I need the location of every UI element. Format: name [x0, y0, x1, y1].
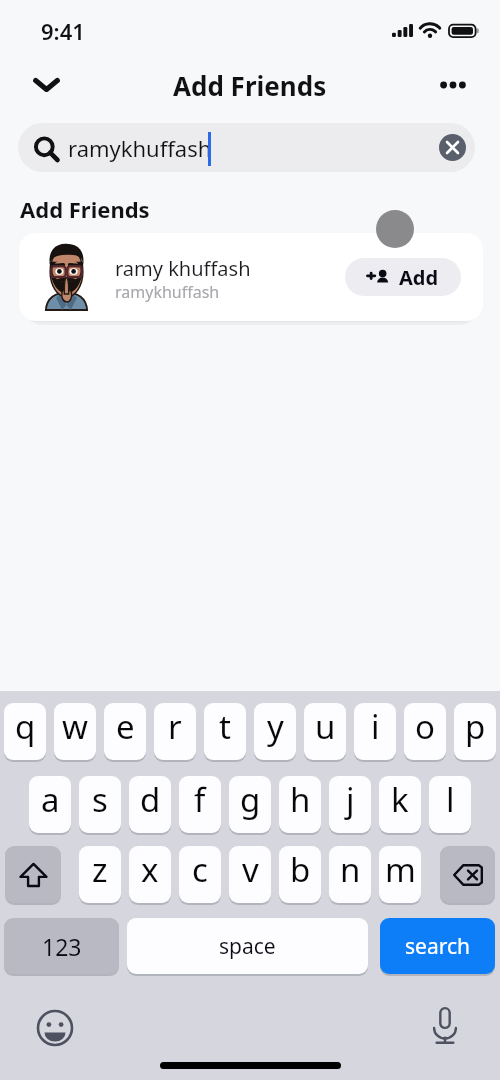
button[interactable]: Emoji keyboard — [36, 1009, 74, 1047]
button[interactable]: z — [79, 846, 121, 903]
button[interactable]: i — [354, 703, 396, 760]
staticText: u — [315, 704, 336, 749]
button[interactable]: p — [454, 703, 496, 760]
staticText: q — [15, 704, 36, 749]
staticText: v — [242, 847, 259, 892]
button[interactable]: o — [404, 703, 446, 760]
staticText: k — [391, 777, 409, 822]
staticText: e — [116, 704, 135, 749]
button[interactable]: space — [127, 918, 368, 974]
other: Backspace — [440, 846, 495, 905]
staticText: Add — [399, 264, 439, 291]
staticText: ramykhuffash — [68, 133, 212, 163]
staticText: y — [267, 704, 284, 749]
staticText: l — [446, 777, 455, 822]
staticText: x — [141, 847, 159, 892]
button[interactable]: Dictation — [426, 1007, 464, 1045]
button[interactable]: Close — [18, 58, 75, 112]
button[interactable]: h — [279, 776, 321, 833]
staticText: r — [168, 704, 182, 749]
button[interactable]: d — [129, 776, 171, 833]
button[interactable]: k — [379, 776, 421, 833]
button[interactable]: s — [79, 776, 121, 833]
staticText: d — [140, 777, 161, 822]
button[interactable]: r — [154, 703, 196, 760]
staticText: m — [385, 847, 416, 892]
button[interactable]: b — [279, 846, 321, 903]
button[interactable]: ramy khuffash — [19, 233, 483, 321]
other: Shift — [5, 846, 61, 905]
button[interactable]: Add — [345, 258, 461, 296]
button[interactable]: Clear text — [439, 134, 466, 161]
button[interactable]: g — [229, 776, 271, 833]
button[interactable]: j — [329, 776, 371, 833]
staticText: a — [41, 777, 60, 822]
button[interactable]: ramykhuffash — [18, 123, 475, 172]
staticText: ramy khuffash — [115, 255, 251, 282]
button[interactable] — [5, 846, 61, 903]
button[interactable]: f — [179, 776, 221, 833]
staticText: o — [415, 704, 435, 749]
staticText: j — [346, 777, 355, 822]
staticText: h — [290, 777, 311, 822]
staticText: p — [465, 704, 486, 749]
staticText: t — [219, 704, 231, 749]
button[interactable]: y — [254, 703, 296, 760]
button[interactable]: x — [129, 846, 171, 903]
staticText: i — [371, 704, 380, 749]
button[interactable]: c — [179, 846, 221, 903]
staticText: ramykhuffash — [115, 281, 220, 303]
button[interactable]: q — [4, 703, 46, 760]
staticText: search — [405, 932, 470, 961]
staticText: space — [219, 932, 276, 961]
button[interactable]: m — [379, 846, 421, 903]
button[interactable]: e — [104, 703, 146, 760]
button[interactable]: l — [429, 776, 471, 833]
button[interactable]: 123 — [4, 918, 119, 974]
staticText: 123 — [42, 931, 82, 962]
button[interactable]: More options — [424, 58, 482, 112]
staticText: n — [340, 847, 361, 892]
button[interactable]: a — [29, 776, 71, 833]
staticText: Add Friends — [20, 194, 150, 224]
staticText: b — [290, 847, 311, 892]
staticText: Add Friends — [173, 68, 327, 103]
staticText: 9:41 — [41, 16, 85, 46]
button[interactable]: v — [229, 846, 271, 903]
staticText: c — [192, 847, 208, 892]
button[interactable]: t — [204, 703, 246, 760]
staticText: f — [194, 777, 206, 822]
staticText: g — [240, 777, 261, 822]
button[interactable] — [440, 846, 495, 903]
staticText: z — [92, 847, 108, 892]
staticText: w — [62, 704, 88, 749]
staticText: s — [92, 777, 108, 822]
button[interactable]: search — [380, 918, 495, 974]
button[interactable]: n — [329, 846, 371, 903]
button[interactable]: w — [54, 703, 96, 760]
button[interactable]: u — [304, 703, 346, 760]
